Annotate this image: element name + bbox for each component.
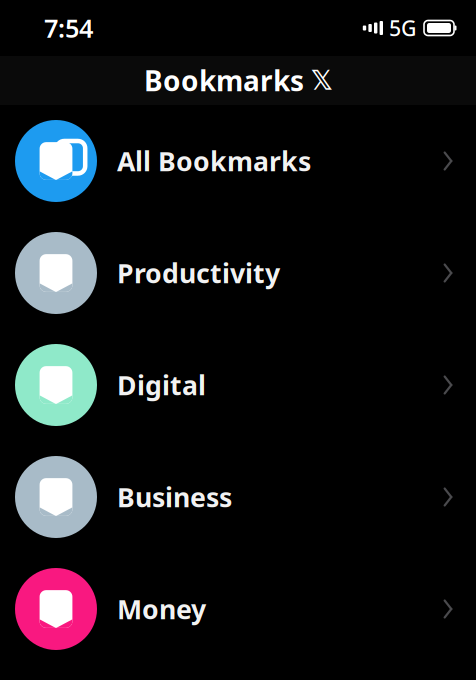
- staticText: Bookmarks: [144, 62, 304, 99]
- staticText: 5G: [389, 14, 417, 42]
- staticText: 7:54: [44, 11, 93, 45]
- button[interactable]: Bookmarks: [0, 56, 476, 105]
- staticText: Business: [117, 479, 232, 515]
- button[interactable]: Productivity: [0, 217, 476, 329]
- staticText: Productivity: [117, 255, 280, 291]
- staticText: All Bookmarks: [117, 143, 311, 179]
- button[interactable]: Business: [0, 441, 476, 553]
- button[interactable]: All Bookmarks: [0, 105, 476, 217]
- staticText: Money: [117, 591, 206, 627]
- button[interactable]: Digital: [0, 329, 476, 441]
- staticText: Digital: [117, 367, 206, 403]
- staticText: 𝕏: [311, 65, 332, 96]
- button[interactable]: Money: [0, 553, 476, 665]
